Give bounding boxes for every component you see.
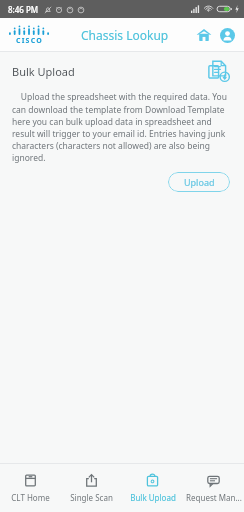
button[interactable]: Single Scan [61, 464, 122, 512]
staticText: Bulk Upload [12, 64, 75, 79]
staticText: Upload [184, 176, 215, 188]
staticText: CISCO [16, 36, 43, 46]
staticText: Bulk Upload [130, 492, 176, 503]
button[interactable]: CLT Home [0, 464, 61, 512]
staticText: Upload the spreadsheet with the required… [12, 91, 234, 163]
button[interactable]: Profile [217, 25, 237, 45]
button[interactable]: Bulk Upload [122, 464, 183, 512]
button[interactable]: Request Man... [183, 464, 244, 512]
staticText: CLT Home [11, 492, 50, 503]
button[interactable]: Upload [168, 172, 230, 192]
staticText: Single Scan [70, 492, 113, 503]
staticText: 8:46 PM [8, 4, 39, 15]
button[interactable]: Home [194, 25, 214, 45]
staticText: Request Man... [186, 492, 242, 503]
staticText: Chassis Lookup [81, 27, 169, 43]
button[interactable]: Cisco [9, 24, 49, 46]
button[interactable]: Download Template [206, 58, 232, 84]
